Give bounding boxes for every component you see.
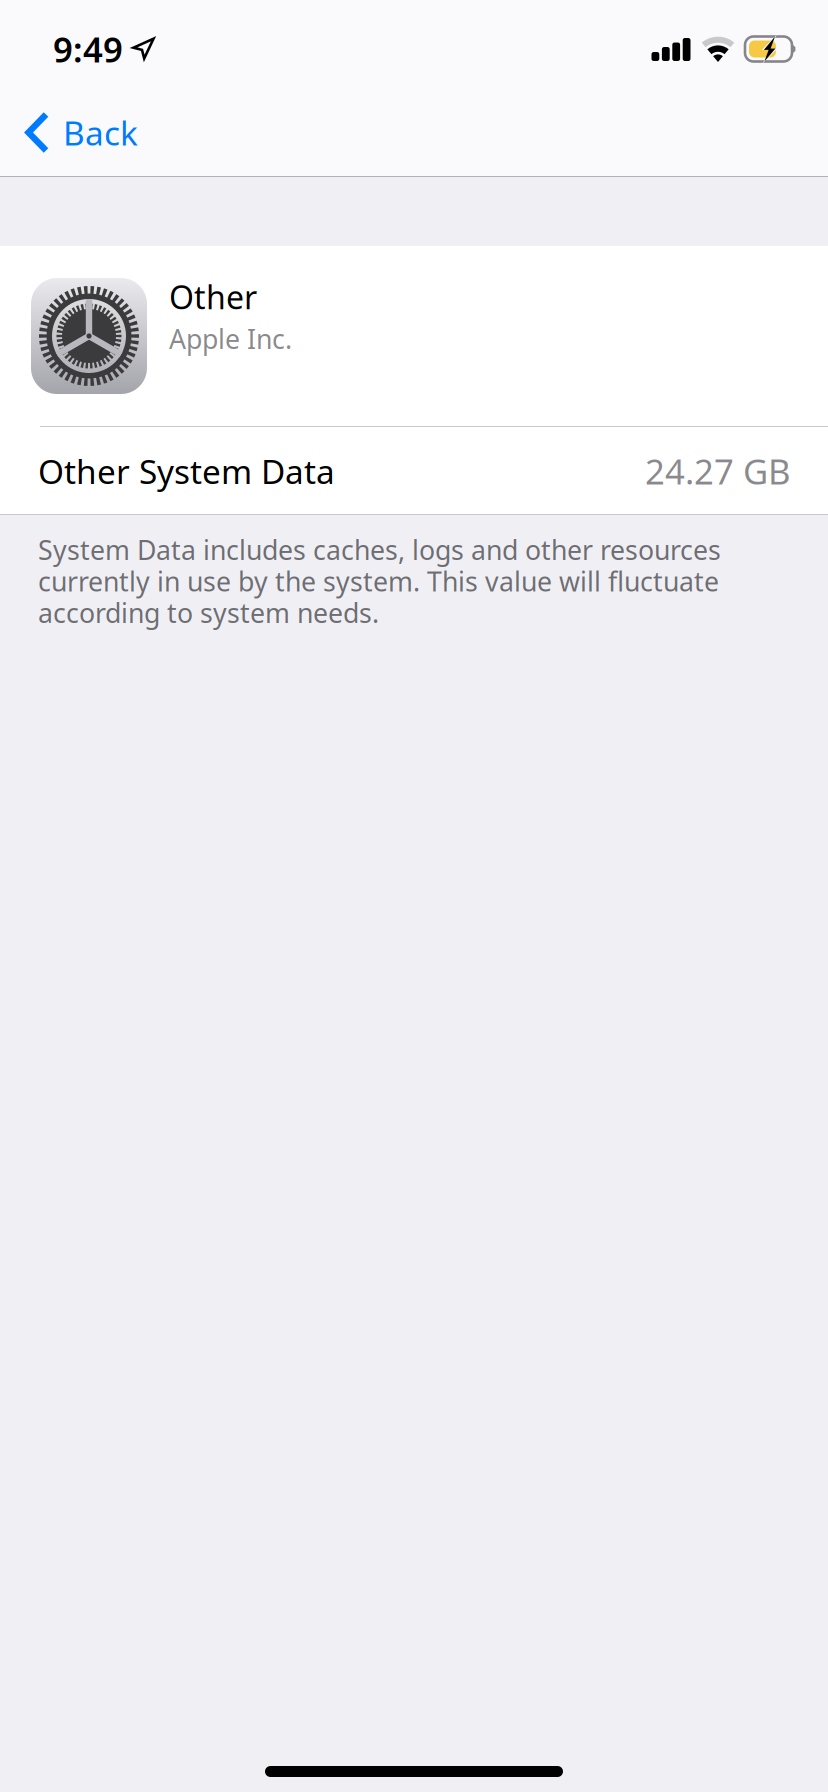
staticText: Back [63,110,138,155]
staticText: Other [169,275,257,318]
staticText: 9:49 [53,26,123,72]
staticText: Apple Inc. [169,321,292,356]
button[interactable]: Other System Data [0,427,828,515]
staticText: System Data includes caches, logs and ot… [38,532,721,630]
staticText: 24.27 GB [645,448,791,494]
staticText: Other System Data [38,449,335,493]
button[interactable]: Back [0,88,156,177]
